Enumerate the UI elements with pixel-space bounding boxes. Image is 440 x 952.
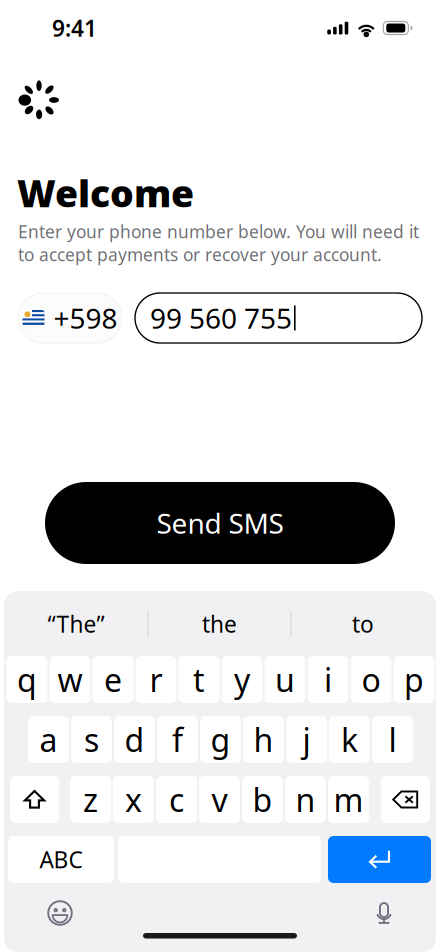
button[interactable]: n: [285, 776, 326, 823]
button[interactable]: w: [49, 656, 90, 703]
button[interactable]: s: [71, 716, 112, 763]
button[interactable]: r: [135, 656, 176, 703]
staticText: c: [169, 778, 184, 821]
button[interactable]: c: [156, 776, 197, 823]
staticText: 99 560 755: [150, 299, 292, 337]
staticText: k: [341, 718, 358, 761]
staticText: p: [404, 658, 424, 701]
staticText: t: [193, 658, 205, 701]
button[interactable]: ABC: [8, 836, 114, 883]
button[interactable]: Emoji keyboard: [43, 896, 77, 930]
staticText: n: [295, 778, 315, 821]
staticText: w: [57, 658, 82, 701]
button[interactable]: t: [178, 656, 219, 703]
staticText: +598: [53, 299, 117, 337]
button[interactable]: “The”: [4, 602, 147, 646]
button[interactable]: to: [291, 602, 434, 646]
staticText: f: [172, 718, 183, 761]
button[interactable]: i: [307, 656, 348, 703]
button[interactable]: x: [113, 776, 154, 823]
staticText: v: [211, 778, 227, 821]
staticText: Welcome: [17, 168, 194, 218]
staticText: z: [83, 778, 98, 821]
staticText: Send SMS: [156, 504, 283, 542]
button[interactable]: g: [200, 716, 241, 763]
button[interactable]: a: [28, 716, 69, 763]
staticText: q: [17, 658, 37, 701]
button[interactable]: b: [242, 776, 283, 823]
button[interactable]: l: [372, 716, 413, 763]
button[interactable]: p: [393, 656, 434, 703]
button[interactable]: j: [286, 716, 327, 763]
button[interactable]: Send SMS: [45, 482, 395, 564]
staticText: to: [352, 609, 374, 639]
staticText: a: [39, 718, 57, 761]
button[interactable]: m: [328, 776, 369, 823]
button[interactable]: e: [92, 656, 133, 703]
staticText: h: [253, 718, 273, 761]
staticText: b: [252, 778, 272, 821]
staticText: m: [333, 778, 363, 821]
staticText: the: [202, 609, 237, 639]
button[interactable]: k: [329, 716, 370, 763]
button[interactable]: d: [114, 716, 155, 763]
staticText: “The”: [47, 609, 104, 639]
button[interactable]: q: [6, 656, 47, 703]
button[interactable]: Dictation: [370, 898, 398, 928]
staticText: 9:41: [52, 13, 97, 43]
button[interactable]: Phone number: [135, 293, 422, 343]
button[interactable]: Country code +598: [18, 293, 122, 343]
button[interactable]: [10, 776, 59, 823]
button[interactable]: [328, 836, 431, 883]
staticText: e: [104, 658, 122, 701]
staticText: r: [149, 658, 162, 701]
staticText: u: [275, 658, 295, 701]
button[interactable]: f: [157, 716, 198, 763]
button[interactable]: o: [350, 656, 391, 703]
button[interactable]: v: [199, 776, 240, 823]
button[interactable]: h: [243, 716, 284, 763]
staticText: j: [302, 718, 310, 761]
staticText: d: [124, 718, 144, 761]
button[interactable]: z: [70, 776, 111, 823]
staticText: x: [125, 778, 142, 821]
button[interactable]: u: [264, 656, 305, 703]
staticText: s: [84, 718, 99, 761]
staticText: i: [324, 658, 332, 701]
staticText: l: [388, 718, 396, 761]
button[interactable]: y: [221, 656, 262, 703]
staticText: g: [210, 718, 230, 761]
button[interactable]: [381, 776, 430, 823]
staticText: Enter your phone number below. You will …: [18, 220, 419, 266]
staticText: y: [234, 658, 250, 701]
staticText: o: [361, 658, 380, 701]
staticText: ABC: [39, 844, 82, 874]
button[interactable]: the: [148, 602, 290, 646]
